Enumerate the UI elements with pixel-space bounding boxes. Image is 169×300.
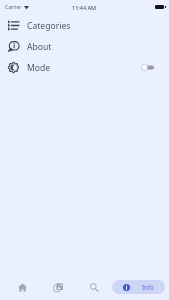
- button[interactable]: Collections: [40, 274, 76, 300]
- button[interactable]: Dark mode switch: [141, 63, 154, 72]
- staticText: Categories: [27, 20, 71, 32]
- button[interactable]: About: [0, 36, 169, 57]
- staticText: Info: [142, 283, 154, 291]
- button[interactable]: Home: [4, 274, 40, 300]
- button[interactable]: Categories: [0, 15, 169, 36]
- button[interactable]: Mode: [0, 57, 169, 78]
- staticText: Mode: [27, 62, 51, 74]
- staticText: 11:44 AM: [72, 4, 97, 11]
- staticText: Carrier: [5, 4, 22, 11]
- button[interactable]: Info: [112, 280, 165, 294]
- staticText: About: [27, 41, 52, 53]
- button[interactable]: Search: [76, 274, 112, 300]
